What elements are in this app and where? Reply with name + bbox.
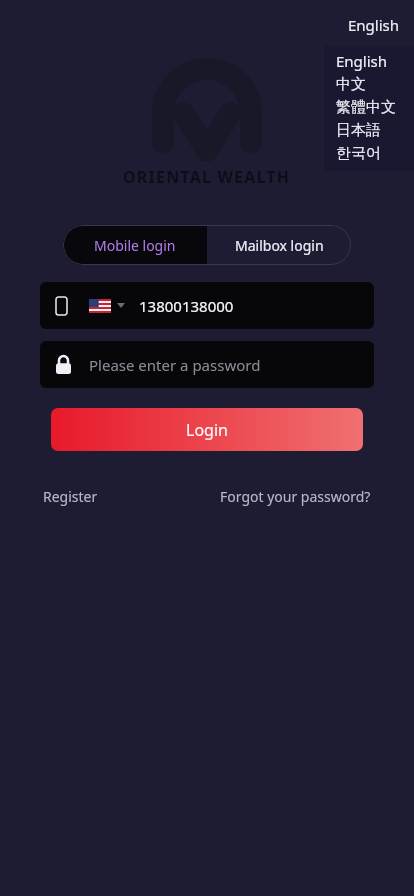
staticText: English (348, 15, 400, 35)
staticText: Login (186, 419, 228, 441)
button[interactable]: 中文 (336, 73, 414, 96)
staticText: 13800138000 (139, 296, 234, 316)
staticText: 한국어 (336, 144, 381, 163)
button[interactable]: Forgot your password? (212, 483, 379, 510)
button[interactable]: Login (51, 408, 363, 451)
button[interactable]: English (344, 13, 404, 37)
button[interactable]: 日本語 (336, 119, 414, 142)
staticText: 日本語 (336, 121, 381, 140)
button[interactable]: Register (35, 483, 106, 510)
staticText: Mobile login (94, 236, 176, 255)
staticText: Please enter a password (89, 355, 261, 375)
staticText: English (336, 51, 388, 71)
button[interactable]: Mobile login (63, 225, 207, 265)
button[interactable]: 繁體中文 (336, 96, 414, 119)
button[interactable]: Please enter a password (40, 341, 374, 388)
button[interactable]: Mailbox login (207, 225, 351, 265)
staticText: Mailbox login (235, 236, 324, 255)
button[interactable]: 13800138000 (40, 282, 374, 329)
staticText: 繁體中文 (336, 98, 396, 117)
staticText: Forgot your password? (220, 487, 371, 506)
staticText: 中文 (336, 75, 366, 94)
staticText: Register (43, 487, 98, 506)
button[interactable]: 한국어 (336, 142, 414, 165)
staticText: ORIENTAL WEALTH (123, 166, 291, 188)
button[interactable]: English (336, 49, 414, 73)
